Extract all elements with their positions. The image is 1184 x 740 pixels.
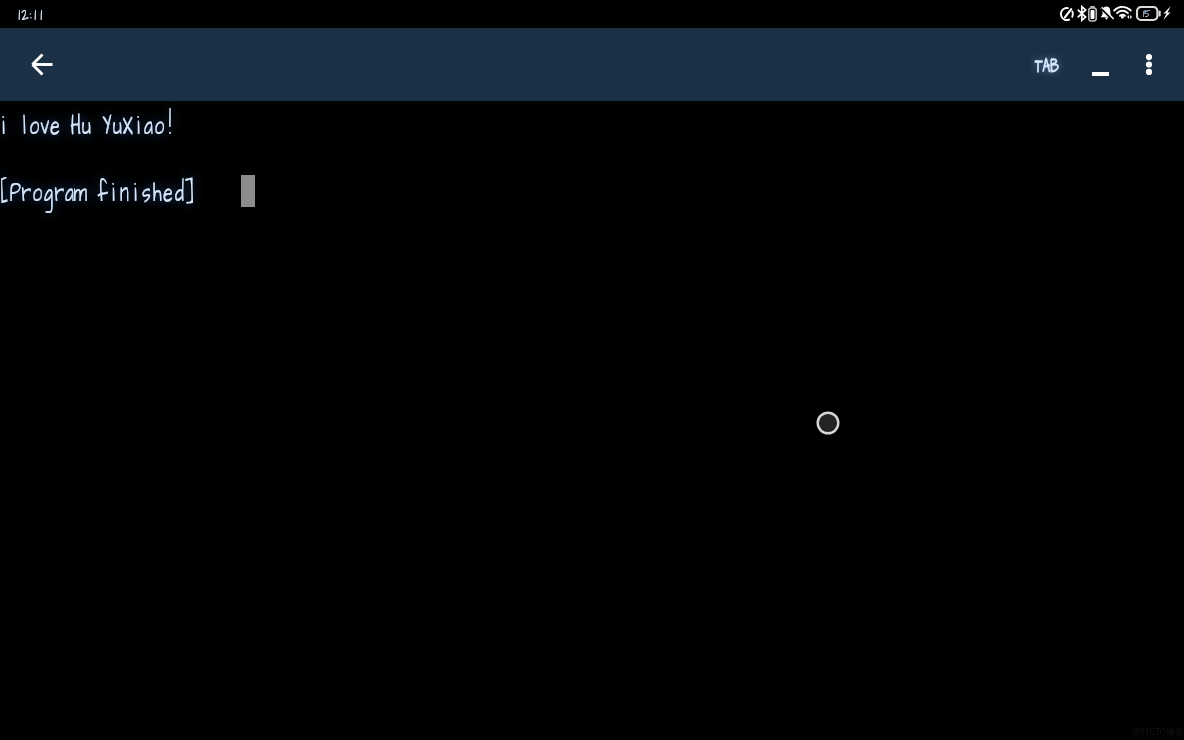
staticText: o xyxy=(154,105,165,145)
staticText: X xyxy=(123,105,133,145)
staticText: 1 xyxy=(40,3,43,27)
staticText: d xyxy=(175,172,184,212)
staticText: o xyxy=(32,172,43,212)
staticText: i xyxy=(134,172,137,212)
staticText: h xyxy=(153,172,162,212)
staticText: g xyxy=(44,172,53,212)
staticText: v xyxy=(40,105,50,145)
button[interactable]: Back xyxy=(18,40,66,88)
button[interactable]: Console output xyxy=(0,101,1184,740)
staticText: u xyxy=(82,105,91,145)
staticText: l xyxy=(23,105,26,145)
staticText: e xyxy=(163,172,173,212)
staticText: a xyxy=(65,172,74,212)
staticText: i xyxy=(112,172,115,212)
staticText: 15 xyxy=(1143,6,1151,21)
staticText xyxy=(88,172,96,212)
staticText: n xyxy=(120,172,129,212)
staticText: Y xyxy=(102,105,112,145)
staticText: 1 xyxy=(34,3,37,27)
staticText: P xyxy=(10,172,21,212)
staticText: e xyxy=(50,105,60,145)
staticText: o xyxy=(29,105,40,145)
staticText: s xyxy=(142,172,151,212)
staticText: TAB xyxy=(1035,52,1059,80)
staticText: m xyxy=(74,172,87,212)
button[interactable]: Move cursor xyxy=(812,407,844,439)
button[interactable]: More options xyxy=(1125,40,1173,88)
staticText: @51CTO博客 xyxy=(1132,726,1184,738)
staticText: i xyxy=(137,105,140,145)
staticText xyxy=(62,105,70,145)
staticText xyxy=(93,105,101,145)
staticText: : xyxy=(29,3,32,27)
staticText: H xyxy=(71,105,81,145)
button[interactable]: Minimize xyxy=(1076,40,1124,88)
staticText: i xyxy=(2,105,5,145)
staticText: ! xyxy=(169,105,171,145)
staticText: r xyxy=(54,172,65,212)
staticText: u xyxy=(113,105,122,145)
staticText: ] xyxy=(185,172,195,212)
staticText: f xyxy=(98,172,108,212)
staticText: 2 xyxy=(21,3,29,27)
staticText: r xyxy=(21,172,32,212)
staticText: a xyxy=(144,105,153,145)
staticText: 1 xyxy=(18,3,21,27)
staticText: [ xyxy=(1,172,8,212)
button[interactable]: TAB xyxy=(1015,42,1079,90)
